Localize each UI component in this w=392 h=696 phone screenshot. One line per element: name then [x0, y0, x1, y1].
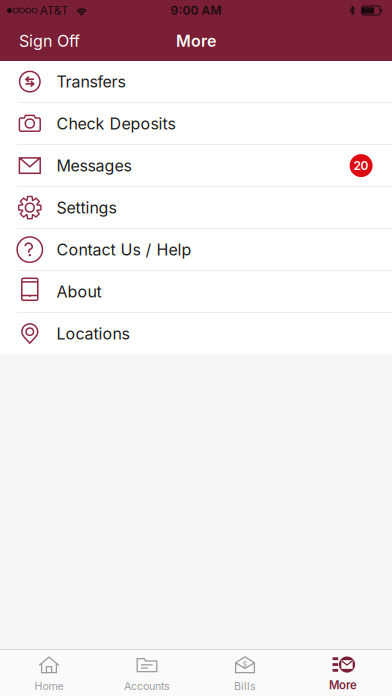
button[interactable]: Locations: [0, 313, 392, 354]
button[interactable]: Accounts: [98, 650, 196, 696]
staticText: Bills: [234, 680, 256, 692]
staticText: Transfers: [57, 72, 126, 91]
button[interactable]: Home: [0, 650, 98, 696]
staticText: Accounts: [124, 680, 170, 692]
button[interactable]: More: [294, 650, 392, 696]
staticText: More: [176, 31, 216, 51]
staticText: Sign Off: [19, 31, 80, 51]
staticText: 20: [354, 158, 369, 173]
staticText: Check Deposits: [57, 114, 176, 133]
button[interactable]: Contact Us / Help: [0, 229, 392, 271]
button[interactable]: Transfers: [0, 61, 392, 103]
staticText: About: [57, 282, 102, 301]
button[interactable]: Settings: [0, 187, 392, 229]
button[interactable]: Check Deposits: [0, 103, 392, 145]
button[interactable]: About: [0, 271, 392, 313]
staticText: Contact Us / Help: [57, 240, 192, 259]
staticText: AT&T: [40, 3, 69, 18]
button[interactable]: Messages: [0, 145, 392, 187]
staticText: Messages: [57, 156, 132, 175]
staticText: $: [242, 660, 247, 669]
staticText: Locations: [57, 324, 130, 343]
staticText: Home: [34, 680, 63, 692]
button[interactable]: $: [196, 650, 294, 696]
button[interactable]: Sign Off: [0, 21, 92, 61]
staticText: 9:00 AM: [170, 3, 221, 18]
staticText: Settings: [57, 198, 117, 217]
staticText: More: [329, 678, 357, 692]
